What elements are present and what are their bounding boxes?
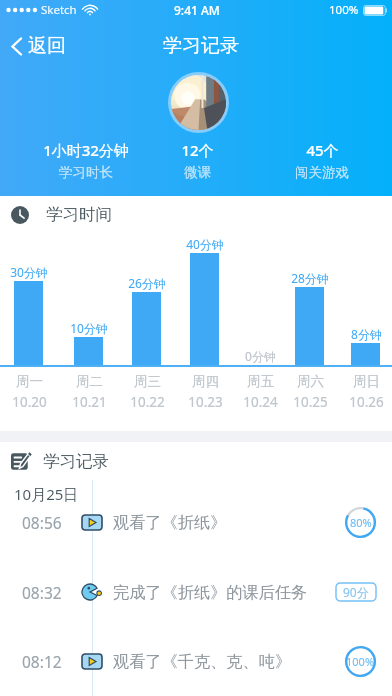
staticText: Sketch	[41, 2, 77, 18]
staticText: 周三	[134, 373, 161, 390]
staticText: 完成了《折纸》的课后任务	[113, 582, 308, 602]
staticText: 10.21	[72, 393, 107, 411]
staticText: 12个	[181, 140, 214, 160]
staticText: 100%	[329, 2, 359, 18]
staticText: 40分钟	[186, 236, 224, 252]
staticText: 闯关游戏	[295, 164, 349, 181]
button[interactable]: 08:12	[0, 639, 392, 683]
staticText: 0分钟	[245, 348, 276, 364]
staticText: 08:56	[22, 512, 62, 533]
staticText: 学习时长	[59, 164, 113, 181]
staticText: 10.22	[130, 393, 165, 411]
staticText: 学习时间	[46, 204, 112, 225]
staticText: 08:12	[22, 651, 62, 672]
staticText: 80%	[350, 515, 372, 530]
staticText: 周五	[247, 373, 274, 390]
staticText: 28分钟	[291, 270, 329, 286]
staticText: 周四	[192, 373, 219, 390]
staticText: 45个	[306, 140, 339, 160]
staticText: 学习记录	[43, 451, 109, 472]
staticText: 学习记录	[163, 34, 239, 58]
staticText: 10月25日	[14, 484, 79, 504]
staticText: 1小时32分钟	[43, 140, 129, 160]
staticText: 8分钟	[351, 326, 382, 342]
staticText: 9:41 AM	[174, 2, 220, 18]
staticText: 100%	[346, 654, 375, 669]
staticText: 观看了《折纸》	[113, 512, 227, 532]
staticText: 10.25	[293, 393, 328, 411]
staticText: 周日	[353, 373, 380, 390]
staticText: 微课	[184, 164, 211, 181]
staticText: 周一	[16, 373, 43, 390]
staticText: 10.23	[188, 393, 223, 411]
staticText: 08:32	[22, 582, 62, 603]
staticText: 10.26	[349, 393, 384, 411]
button[interactable]: 08:56	[0, 500, 392, 544]
button[interactable]: 返回	[0, 27, 80, 65]
staticText: 26分钟	[128, 275, 166, 291]
staticText: 观看了《千克、克、吨》	[113, 651, 292, 671]
staticText: 10.24	[243, 393, 278, 411]
staticText: 90分	[343, 584, 369, 600]
button[interactable]: 08:32	[0, 570, 392, 614]
staticText: 10分钟	[70, 320, 108, 336]
staticText: 周二	[76, 373, 103, 390]
staticText: 返回	[28, 34, 66, 58]
staticText: 30分钟	[10, 264, 48, 280]
staticText: 周六	[297, 373, 324, 390]
staticText: 10.20	[12, 393, 47, 411]
